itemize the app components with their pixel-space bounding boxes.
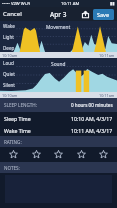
staticText: Light	[3, 34, 14, 40]
staticText: Sound	[51, 61, 66, 68]
button[interactable]: Save	[93, 9, 114, 20]
staticText: 0 hours 00 minutes	[71, 102, 113, 108]
staticText: 10:10am	[2, 93, 18, 98]
button[interactable]: Share	[81, 10, 90, 19]
staticText: ▮▮	[110, 1, 115, 6]
staticText: Save	[97, 11, 110, 18]
staticText: Silent	[3, 82, 15, 88]
staticText: NOTES:	[4, 165, 20, 171]
staticText: 10:10am	[2, 53, 18, 58]
button[interactable]: Rate 4 stars	[77, 150, 86, 159]
staticText: Wake Time	[4, 127, 31, 134]
staticText: 10:11am	[99, 53, 115, 58]
button[interactable]: Rate 1 stars	[9, 150, 18, 159]
staticText: Cancel	[3, 10, 22, 18]
staticText: Deep	[3, 45, 15, 51]
button[interactable]: Sleep Time	[4, 112, 113, 124]
staticText: RATING:	[4, 139, 22, 145]
staticText: 10:10 AM, 4/3/17	[71, 115, 113, 122]
staticText: 10:11am	[99, 93, 115, 98]
staticText: 10:11 AM	[61, 1, 80, 7]
staticText: Loud	[3, 60, 14, 66]
staticText: SLEEP LENGTH:	[4, 102, 37, 108]
button[interactable]: Rate 2 stars	[32, 150, 41, 159]
button[interactable]: Cancel	[3, 10, 22, 18]
staticText: ••••• V2W Wi-Fi	[2, 1, 31, 7]
staticText: Wake	[3, 23, 15, 29]
button[interactable]: Rate 3 stars	[54, 150, 63, 159]
staticText: Sleep Time	[4, 115, 31, 122]
staticText: 10:11 AM, 4/3/17	[71, 127, 113, 134]
button[interactable]: Wake Time	[4, 124, 113, 136]
button[interactable]: Rate 5 stars	[99, 150, 108, 159]
staticText: Apr 3	[50, 10, 67, 19]
staticText: Movement	[46, 24, 71, 31]
staticText: Quiet	[3, 71, 15, 77]
